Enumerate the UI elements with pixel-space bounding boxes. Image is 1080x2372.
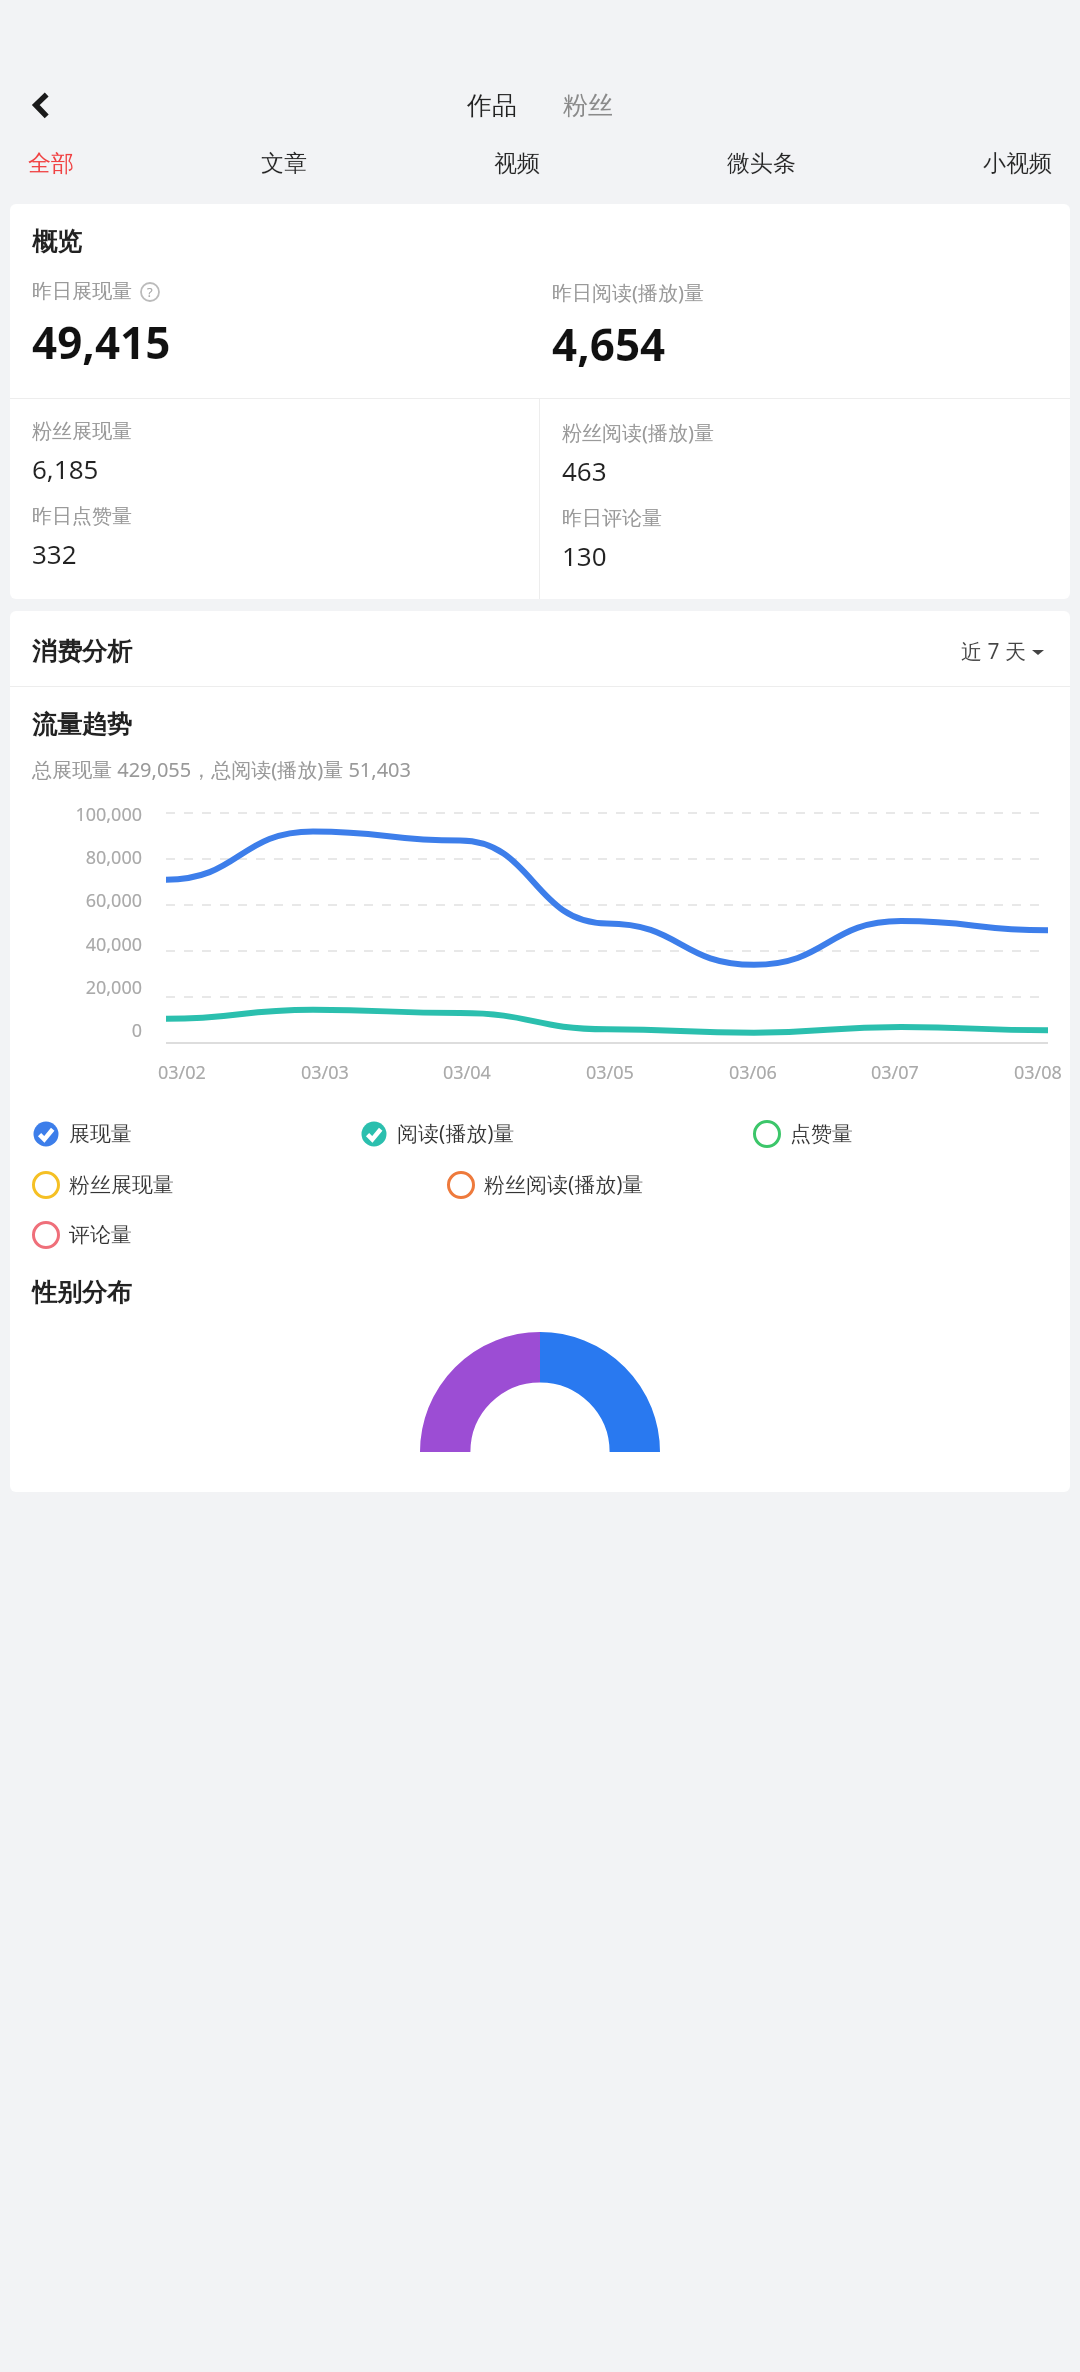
button[interactable]: 粉丝阅读(播放)量 [447, 1168, 1048, 1201]
staticText: 文章 [261, 149, 307, 178]
staticText: 展现量 [69, 1121, 132, 1147]
button[interactable]: 作品 [457, 86, 527, 125]
button[interactable]: Back [18, 81, 66, 129]
staticText: 40,000 [32, 932, 142, 957]
staticText: 100,000 [32, 802, 142, 827]
button[interactable]: 帮助 [139, 281, 161, 303]
staticText: ? [147, 283, 153, 301]
button[interactable]: 粉丝展现量 [32, 1169, 447, 1201]
staticText: 昨日点赞量 [32, 504, 132, 529]
staticText: 阅读(播放)量 [397, 1119, 515, 1148]
staticText: 130 [562, 538, 607, 573]
button[interactable]: 近 7 天 [957, 633, 1048, 670]
button[interactable]: 粉丝 [553, 86, 623, 125]
staticText: 昨日评论量 [562, 506, 662, 531]
staticText: 03/06 [729, 1060, 777, 1085]
staticText: 近 7 天 [961, 637, 1026, 666]
button[interactable]: 展现量 [32, 1118, 360, 1150]
staticText: 60,000 [32, 888, 142, 913]
button[interactable]: 视频 [488, 143, 546, 184]
staticText: 消费分析 [32, 636, 132, 667]
staticText: 03/08 [1014, 1060, 1062, 1085]
staticText: 03/04 [443, 1060, 491, 1085]
staticText: 20,000 [32, 975, 142, 1000]
staticText: 粉丝 [563, 90, 613, 121]
staticText: 作品 [467, 90, 517, 121]
staticText: 粉丝阅读(播放)量 [562, 419, 714, 446]
staticText: 微头条 [727, 149, 796, 178]
button[interactable]: 点赞量 [753, 1118, 1048, 1150]
staticText: 粉丝展现量 [32, 419, 132, 444]
staticText: 昨日展现量 [32, 279, 132, 304]
staticText: 03/05 [586, 1060, 634, 1085]
button[interactable]: 微头条 [721, 143, 802, 184]
staticText: 昨日阅读(播放)量 [552, 279, 704, 306]
staticText: 49,415 [32, 312, 171, 372]
button[interactable]: 全部 [22, 143, 80, 184]
staticText: 4,654 [552, 314, 666, 374]
staticText: 小视频 [983, 149, 1052, 178]
staticText: 全部 [28, 149, 74, 178]
staticText: 03/02 [158, 1060, 206, 1085]
staticText: 点赞量 [790, 1121, 853, 1147]
staticText: 粉丝展现量 [69, 1172, 174, 1198]
button[interactable]: 阅读(播放)量 [360, 1117, 753, 1150]
button[interactable]: 小视频 [977, 143, 1058, 184]
staticText: 332 [32, 536, 77, 571]
staticText: 粉丝阅读(播放)量 [484, 1170, 644, 1199]
staticText: 概览 [32, 226, 82, 257]
staticText: 性别分布 [32, 1277, 132, 1308]
staticText: 流量趋势 [32, 709, 132, 740]
staticText: 0 [32, 1018, 142, 1043]
staticText: 463 [562, 453, 607, 488]
staticText: 03/07 [871, 1060, 919, 1085]
staticText: 6,185 [32, 451, 99, 486]
staticText: 80,000 [32, 845, 142, 870]
staticText: 03/03 [301, 1060, 349, 1085]
button[interactable]: 文章 [255, 143, 313, 184]
staticText: 总展现量 429,055，总阅读(播放)量 51,403 [32, 756, 411, 783]
staticText: 视频 [494, 149, 540, 178]
button[interactable]: 评论量 [32, 1219, 1048, 1251]
staticText: 评论量 [69, 1222, 132, 1248]
